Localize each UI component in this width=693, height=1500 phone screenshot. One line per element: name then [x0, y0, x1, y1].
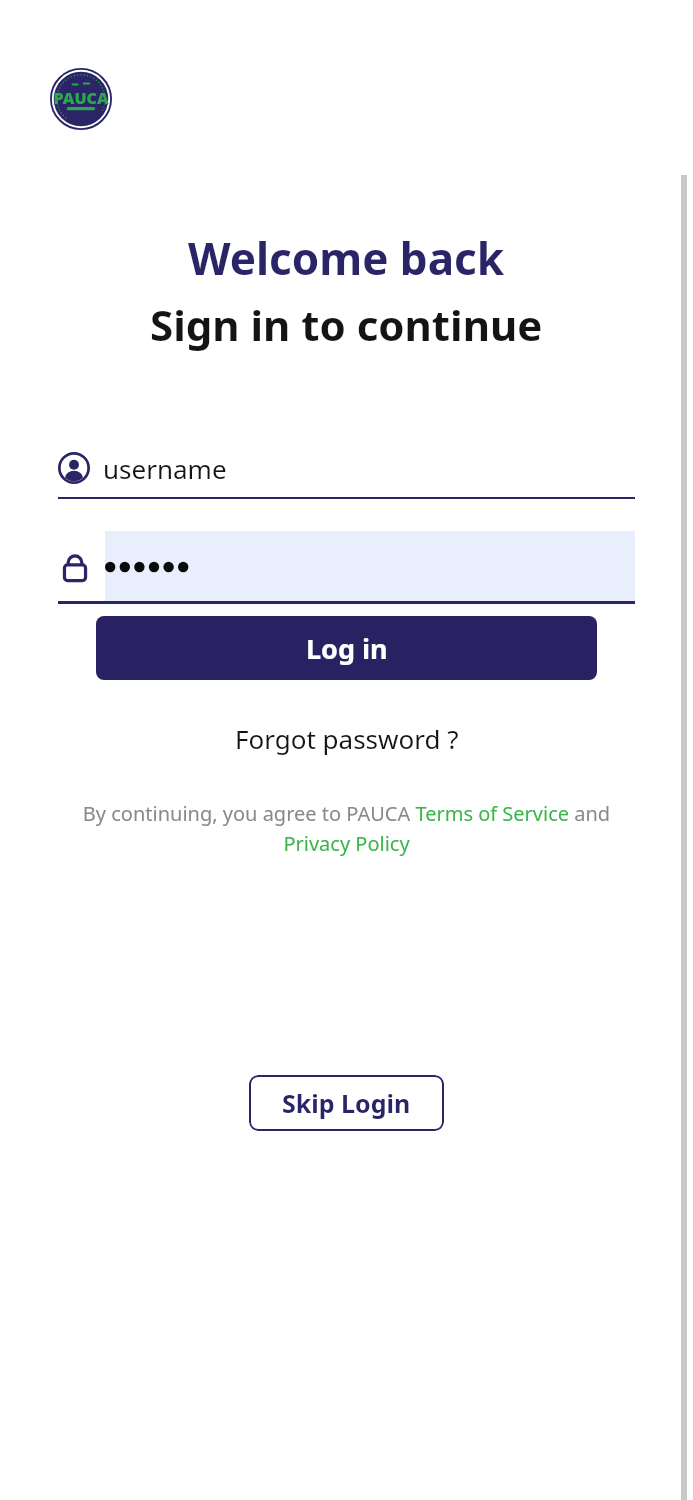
button[interactable]: Skip Login [249, 1075, 444, 1131]
staticText: Welcome back [188, 228, 505, 288]
staticText: Skip Login [282, 1086, 411, 1120]
staticText: By continuing, you agree to PAUCA Terms … [60, 800, 633, 857]
staticText: Sign in to continue [150, 296, 543, 353]
other: PAUCA logo [50, 68, 112, 130]
button[interactable]: Forgot password ? [221, 715, 473, 762]
button[interactable] [58, 531, 635, 602]
staticText: username [103, 451, 227, 486]
button[interactable]: By continuing, you agree to PAUCA Terms … [60, 800, 633, 857]
button[interactable]: username [58, 437, 635, 499]
staticText: PAUCA [53, 87, 109, 109]
staticText: Forgot password ? [235, 721, 459, 756]
staticText: Log in [306, 630, 388, 667]
button[interactable]: Log in [96, 616, 597, 680]
